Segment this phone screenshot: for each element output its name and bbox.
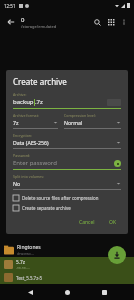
button[interactable]: Download bbox=[108, 246, 126, 264]
button[interactable]: Compression level: bbox=[64, 113, 121, 129]
staticText: drwxrwx--- bbox=[17, 251, 35, 256]
button[interactable]: 5.7z bbox=[0, 257, 134, 271]
button[interactable]: backup bbox=[13, 98, 104, 106]
staticText: backup bbox=[13, 98, 34, 106]
button[interactable]: Recents bbox=[97, 285, 111, 299]
button[interactable]: Home bbox=[60, 285, 74, 299]
staticText: Create separate archive bbox=[22, 205, 71, 211]
staticText: Split into volumes: bbox=[13, 174, 45, 179]
staticText: .7z bbox=[35, 98, 43, 106]
staticText: 5.7z bbox=[16, 259, 26, 266]
button[interactable]: Enter password bbox=[13, 159, 121, 167]
staticText: Encryption: bbox=[13, 133, 33, 138]
other: Show password bbox=[114, 160, 121, 167]
staticText: -rw-rw---- bbox=[16, 266, 30, 270]
staticText: 0 bbox=[21, 16, 25, 24]
staticText: 7z bbox=[13, 119, 19, 126]
button[interactable]: Split into volumes: bbox=[13, 174, 121, 190]
button[interactable]: Create separate archive bbox=[13, 203, 121, 213]
staticText: Normal bbox=[64, 119, 83, 126]
button[interactable]: Test_5.5.7z-5 bbox=[0, 271, 134, 284]
staticText: 12:51 bbox=[4, 3, 16, 9]
staticText: Data (AES-256) bbox=[13, 139, 49, 146]
button[interactable]: More options bbox=[118, 16, 130, 28]
button[interactable]: Grid view bbox=[104, 15, 118, 29]
staticText: Create archive bbox=[13, 76, 67, 87]
staticText: Password: bbox=[13, 153, 31, 158]
staticText: Archive: bbox=[13, 92, 27, 97]
button[interactable]: Search bbox=[90, 15, 104, 29]
button[interactable]: Encryption: bbox=[13, 133, 121, 149]
button[interactable]: Back bbox=[23, 285, 37, 299]
button[interactable]: OK bbox=[105, 217, 121, 228]
staticText: Enter password bbox=[13, 159, 57, 167]
staticText: /storage/emulated bbox=[21, 24, 57, 29]
staticText: OK bbox=[109, 219, 117, 226]
staticText: Ringtones bbox=[17, 244, 41, 251]
button[interactable]: Delete source files after compression bbox=[13, 193, 121, 203]
staticText: Compression level: bbox=[64, 113, 96, 118]
button[interactable]: Ringtones bbox=[0, 242, 134, 257]
staticText: Cancel bbox=[79, 219, 95, 226]
button[interactable]: Archive format: bbox=[13, 113, 58, 129]
staticText: Archive format: bbox=[13, 113, 39, 118]
staticText: No bbox=[13, 180, 21, 187]
staticText: Delete source files after compression bbox=[22, 195, 99, 201]
button[interactable]: Cancel bbox=[75, 217, 99, 228]
staticText: Test_5.5.7z-5 bbox=[16, 275, 43, 281]
button[interactable]: Back bbox=[4, 15, 18, 29]
